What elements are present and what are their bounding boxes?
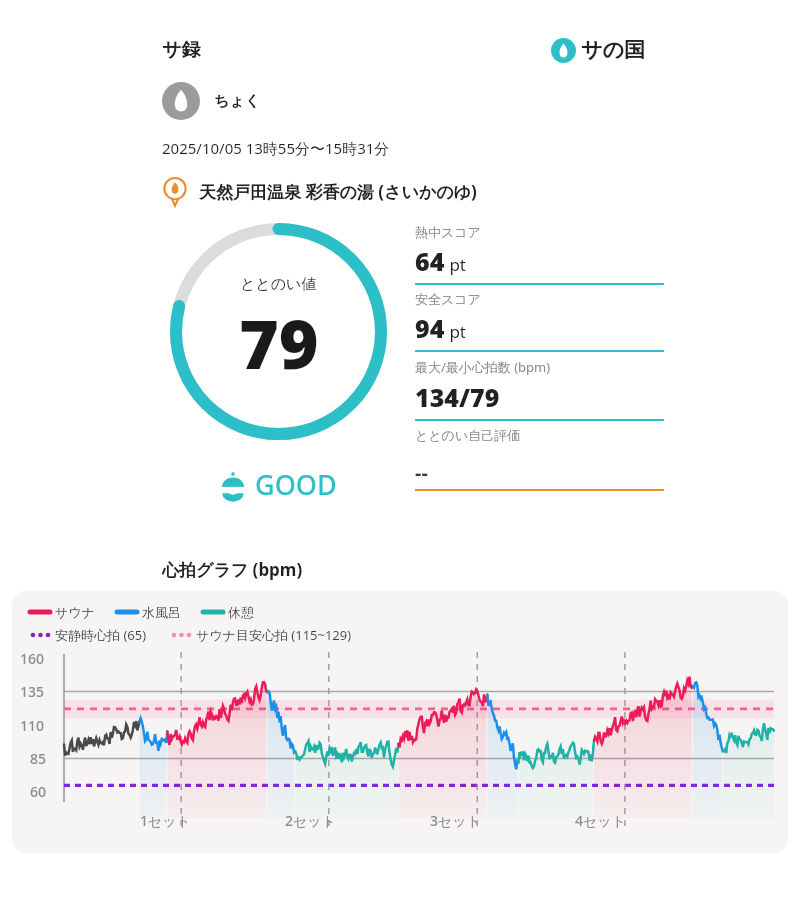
staticText: サウナ目安心拍 (115~129) bbox=[196, 626, 352, 644]
staticText: ちょく bbox=[214, 92, 261, 111]
staticText: サの国 bbox=[581, 37, 645, 63]
staticText: 心拍グラフ (bpm) bbox=[162, 558, 303, 581]
staticText: -- bbox=[415, 459, 428, 486]
staticText: 85 bbox=[30, 749, 47, 768]
button[interactable]: サウナ bbox=[12, 591, 788, 853]
staticText: 水風呂 bbox=[142, 604, 181, 620]
staticText: GOOD bbox=[255, 466, 337, 503]
staticText: pt bbox=[445, 320, 467, 343]
button[interactable]: 熱中スコア bbox=[415, 218, 664, 285]
staticText: 160 bbox=[20, 649, 45, 668]
staticText: 110 bbox=[20, 716, 45, 735]
button[interactable]: 天然戸田温泉 彩香の湯 (さいかのゆ) bbox=[160, 176, 477, 206]
button[interactable]: 安全スコア bbox=[415, 285, 664, 352]
staticText: 天然戸田温泉 彩香の湯 (さいかのゆ) bbox=[199, 180, 477, 203]
staticText: 134/79 bbox=[415, 380, 500, 414]
staticText: サウナ bbox=[55, 604, 95, 620]
staticText: pt bbox=[445, 253, 467, 276]
staticText: 3セット bbox=[430, 811, 481, 830]
staticText: 2セット bbox=[285, 811, 336, 830]
staticText: 79 bbox=[239, 296, 319, 389]
staticText: サ録 bbox=[162, 38, 201, 62]
staticText: 安静時心拍 (65) bbox=[55, 626, 147, 644]
staticText: 4セット bbox=[575, 811, 626, 830]
staticText: 64 bbox=[415, 244, 445, 278]
staticText: 最大/最小心拍数 (bpm) bbox=[415, 358, 551, 376]
button[interactable]: ちょく bbox=[162, 82, 261, 120]
staticText: 安全スコア bbox=[415, 291, 481, 307]
button[interactable]: ととのい自己評価 bbox=[415, 421, 664, 491]
staticText: ととのい自己評価 bbox=[415, 427, 521, 443]
staticText: 休憩 bbox=[228, 604, 254, 620]
button[interactable]: GOOD bbox=[218, 466, 337, 503]
staticText: 熱中スコア bbox=[415, 224, 481, 240]
staticText: 60 bbox=[30, 782, 47, 801]
staticText: ととのい値 bbox=[240, 275, 317, 294]
staticText: 135 bbox=[20, 682, 45, 701]
button[interactable]: 最大/最小心拍数 (bpm) bbox=[415, 352, 664, 421]
staticText: 94 bbox=[415, 311, 445, 345]
staticText: 2025/10/05 13時55分〜15時31分 bbox=[162, 138, 390, 158]
staticText: 1セット bbox=[140, 811, 191, 830]
button[interactable]: サの国 logo bbox=[551, 37, 645, 63]
